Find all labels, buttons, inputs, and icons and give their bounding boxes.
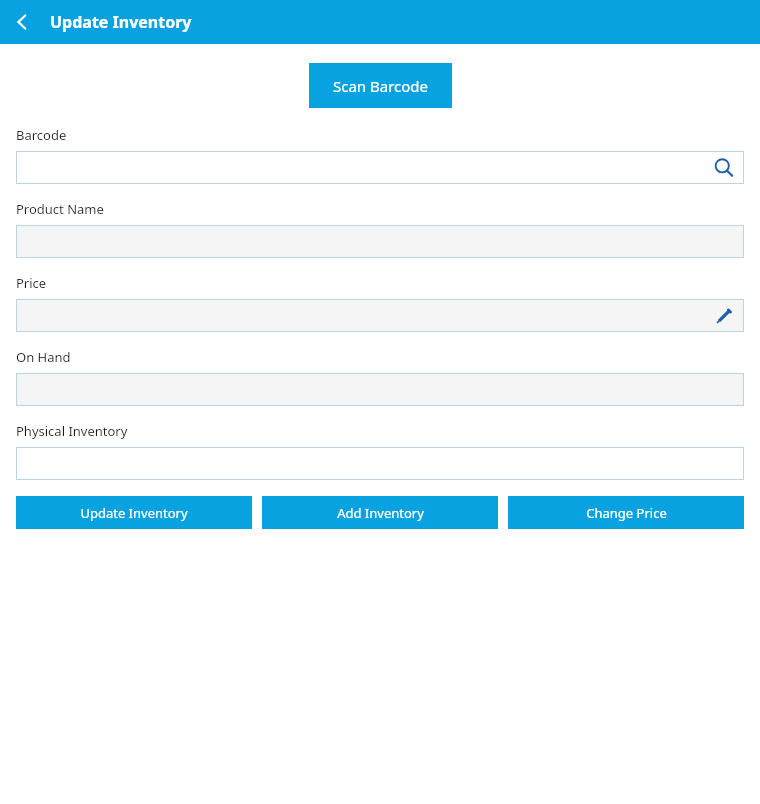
staticText: Update Inventory — [80, 504, 188, 522]
staticText: Change Price — [586, 504, 667, 522]
staticText: Update Inventory — [50, 11, 192, 33]
staticText: Add Inventory — [337, 504, 424, 522]
staticText: Barcode — [16, 126, 67, 144]
button[interactable]: Edit price — [709, 301, 739, 331]
button[interactable]: Change Price — [508, 496, 744, 529]
button[interactable]: Back — [4, 4, 40, 40]
button[interactable]: Scan Barcode — [309, 63, 452, 108]
button[interactable]: Edit price — [16, 299, 744, 332]
button[interactable] — [16, 447, 744, 480]
staticText: Physical Inventory — [16, 422, 128, 440]
button[interactable]: Update Inventory — [16, 496, 252, 529]
button[interactable]: Add Inventory — [262, 496, 498, 529]
staticText: Product Name — [16, 200, 104, 218]
button[interactable]: Search barcode — [709, 153, 739, 183]
staticText: Price — [16, 274, 47, 292]
button[interactable]: Search barcode — [16, 151, 744, 184]
button[interactable] — [16, 373, 744, 406]
button[interactable] — [16, 225, 744, 258]
staticText: On Hand — [16, 348, 71, 366]
staticText: Scan Barcode — [333, 76, 429, 96]
